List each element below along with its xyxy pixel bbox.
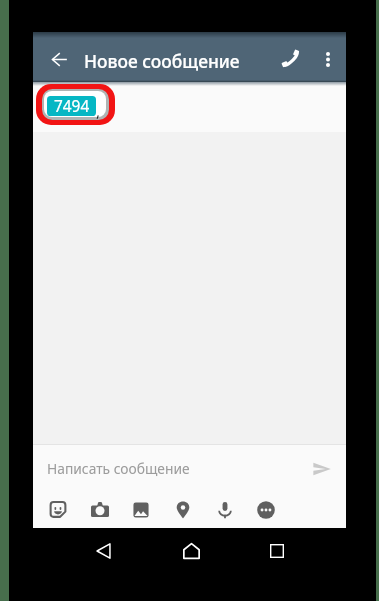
staticText: Новое сообщение (84, 49, 240, 73)
button[interactable]: Voice (212, 497, 238, 523)
button[interactable]: Call (275, 43, 307, 75)
staticText: Написать сообщение (47, 459, 190, 478)
button[interactable]: More (253, 497, 279, 523)
button[interactable]: Back (44, 44, 74, 74)
button[interactable]: Send (307, 454, 337, 484)
button[interactable]: 7494 (47, 96, 96, 116)
button[interactable]: Location (170, 497, 196, 523)
button[interactable]: Home (175, 535, 207, 567)
button[interactable]: More options (312, 43, 344, 75)
staticText: , (96, 101, 101, 121)
button[interactable]: Написать сообщение (33, 445, 346, 491)
button[interactable]: Stickers (45, 497, 71, 523)
button[interactable]: Camera (87, 497, 113, 523)
button[interactable]: Back (87, 535, 119, 567)
staticText: 7494 (54, 96, 90, 116)
button[interactable]: Recents (261, 535, 293, 567)
button[interactable]: Gallery (128, 497, 154, 523)
